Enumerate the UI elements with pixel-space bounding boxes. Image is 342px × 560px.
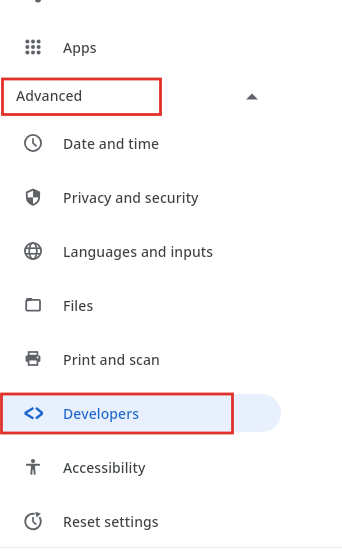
button[interactable]: Date and time bbox=[0, 116, 342, 170]
button[interactable]: Accessibility bbox=[0, 440, 342, 494]
button[interactable]: Privacy and security bbox=[0, 170, 342, 224]
button[interactable]: Reset settings bbox=[0, 494, 342, 548]
button[interactable]: Print and scan bbox=[0, 332, 342, 386]
staticText: Date and time bbox=[63, 134, 160, 153]
staticText: Files bbox=[63, 296, 94, 315]
staticText: Print and scan bbox=[63, 350, 160, 369]
staticText: Languages and inputs bbox=[63, 242, 214, 261]
button[interactable]: Apps bbox=[0, 20, 342, 74]
staticText: Accessibility bbox=[63, 458, 146, 477]
staticText: Reset settings bbox=[63, 512, 159, 531]
button[interactable]: Advanced bbox=[0, 74, 342, 116]
staticText: Privacy and security bbox=[63, 188, 199, 207]
staticText: Advanced bbox=[16, 86, 83, 105]
staticText: Apps bbox=[63, 38, 97, 57]
button[interactable]: Files bbox=[0, 278, 342, 332]
button[interactable]: Languages and inputs bbox=[0, 224, 342, 278]
button[interactable]: Developers bbox=[0, 386, 342, 440]
staticText: Developers bbox=[63, 404, 140, 423]
